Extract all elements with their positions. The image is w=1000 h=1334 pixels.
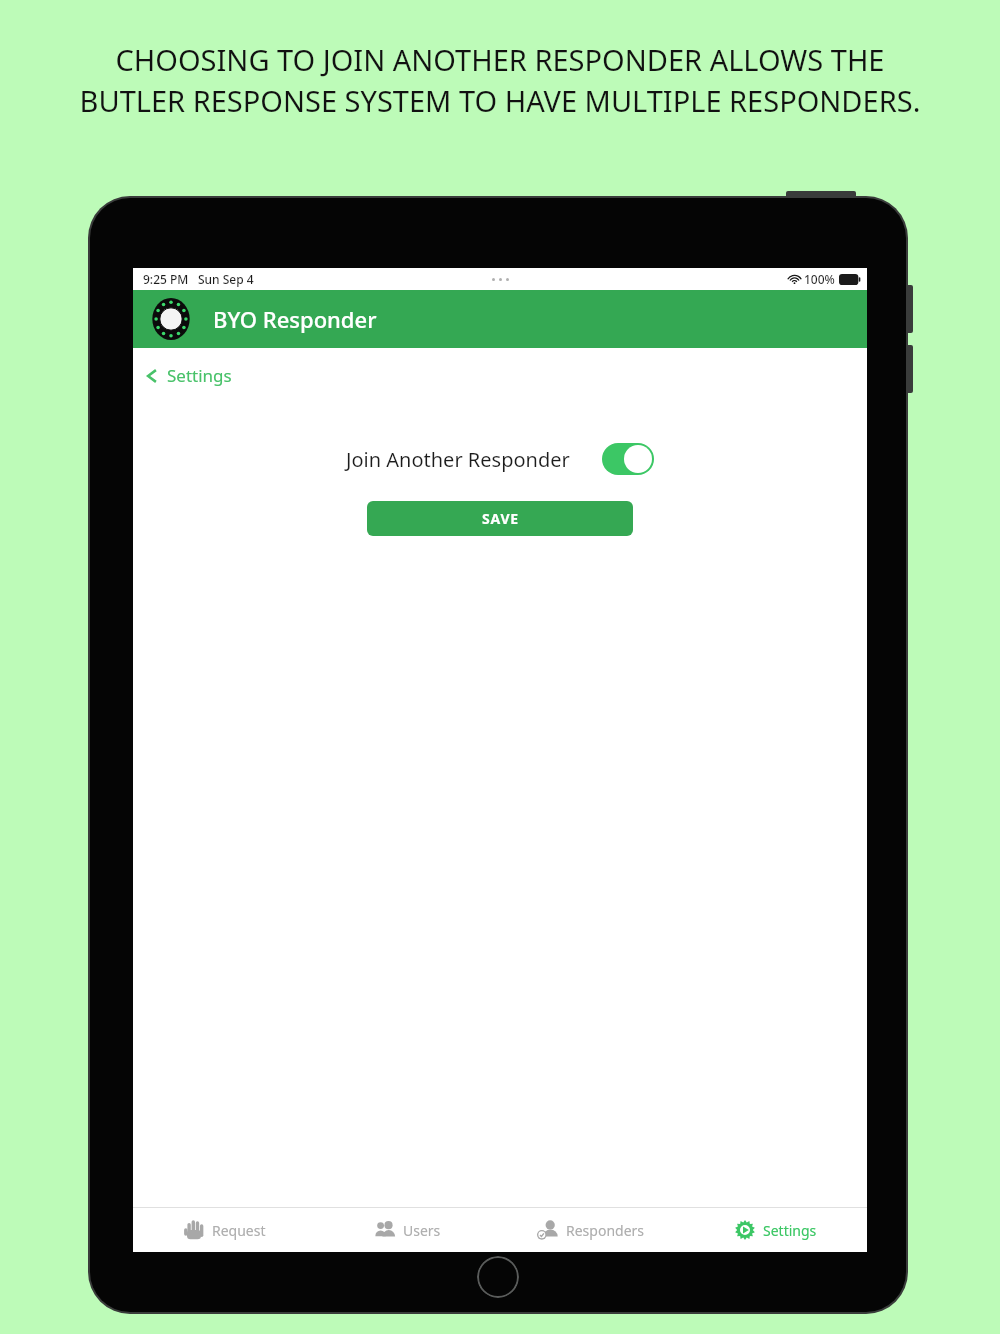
staticText: 9:25 PM bbox=[143, 271, 189, 287]
button[interactable]: SAVE bbox=[367, 501, 633, 536]
staticText: Responders bbox=[566, 1221, 645, 1240]
button[interactable]: Settings bbox=[683, 1208, 867, 1252]
staticText: BYO Responder bbox=[213, 304, 377, 334]
button[interactable]: Settings bbox=[133, 348, 246, 397]
staticText: Sun Sep 4 bbox=[198, 271, 254, 287]
staticText: Settings bbox=[167, 364, 232, 387]
staticText: Settings bbox=[763, 1221, 817, 1240]
button[interactable]: Join Another Responder toggle bbox=[602, 443, 654, 475]
staticText: Request bbox=[212, 1221, 266, 1240]
button[interactable]: Users bbox=[316, 1208, 499, 1252]
staticText: Join Another Responder bbox=[346, 446, 570, 473]
staticText: Users bbox=[403, 1221, 441, 1240]
staticText: SAVE bbox=[482, 509, 519, 528]
staticText: CHOOSING TO JOIN ANOTHER RESPONDER ALLOW… bbox=[60, 40, 940, 121]
button[interactable]: Responders bbox=[499, 1208, 683, 1252]
staticText: 100% bbox=[804, 271, 835, 287]
button[interactable]: Request bbox=[133, 1208, 316, 1252]
